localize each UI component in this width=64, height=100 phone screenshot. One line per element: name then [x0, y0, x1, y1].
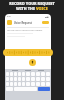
button[interactable] [6, 72, 9, 76]
staticText: Voice Request [14, 21, 32, 25]
button[interactable] [46, 72, 50, 76]
staticText: RECORD YOUR REQUEST [9, 1, 55, 6]
button[interactable]: Symbols [6, 87, 13, 91]
button[interactable] [46, 82, 50, 86]
button[interactable] [18, 72, 21, 76]
button[interactable] [14, 82, 17, 86]
button[interactable] [18, 82, 21, 86]
button[interactable] [41, 82, 45, 86]
button[interactable] [10, 72, 13, 76]
button[interactable] [6, 82, 9, 86]
button[interactable] [26, 82, 30, 86]
staticText: Tap the mic to record your request [7, 29, 43, 32]
button[interactable] [26, 72, 30, 76]
button[interactable] [36, 82, 40, 86]
staticText: WITH THE [16, 6, 36, 11]
button[interactable] [36, 77, 40, 81]
button[interactable] [10, 82, 13, 86]
button[interactable] [10, 77, 13, 81]
button[interactable] [46, 77, 50, 81]
staticText: 9:41 [7, 15, 12, 18]
button[interactable] [36, 72, 40, 76]
button[interactable] [42, 21, 49, 24]
button[interactable] [22, 82, 25, 86]
button[interactable] [31, 82, 35, 86]
button[interactable] [26, 77, 30, 81]
button[interactable] [22, 77, 25, 81]
button[interactable]: Voice Request [7, 19, 49, 26]
button[interactable] [14, 77, 17, 81]
button[interactable] [18, 77, 21, 81]
button[interactable] [41, 77, 45, 81]
button[interactable]: Record voice [29, 59, 36, 66]
button[interactable] [31, 72, 35, 76]
button[interactable]: Voice waveform [3, 49, 53, 56]
button[interactable] [14, 72, 17, 76]
button[interactable] [41, 72, 45, 76]
staticText: VOICE [36, 6, 48, 11]
button[interactable] [22, 72, 25, 76]
button[interactable]: Send [38, 87, 50, 91]
button[interactable] [31, 77, 35, 81]
button[interactable] [6, 77, 9, 81]
staticText: ▂▃ [45, 15, 49, 18]
